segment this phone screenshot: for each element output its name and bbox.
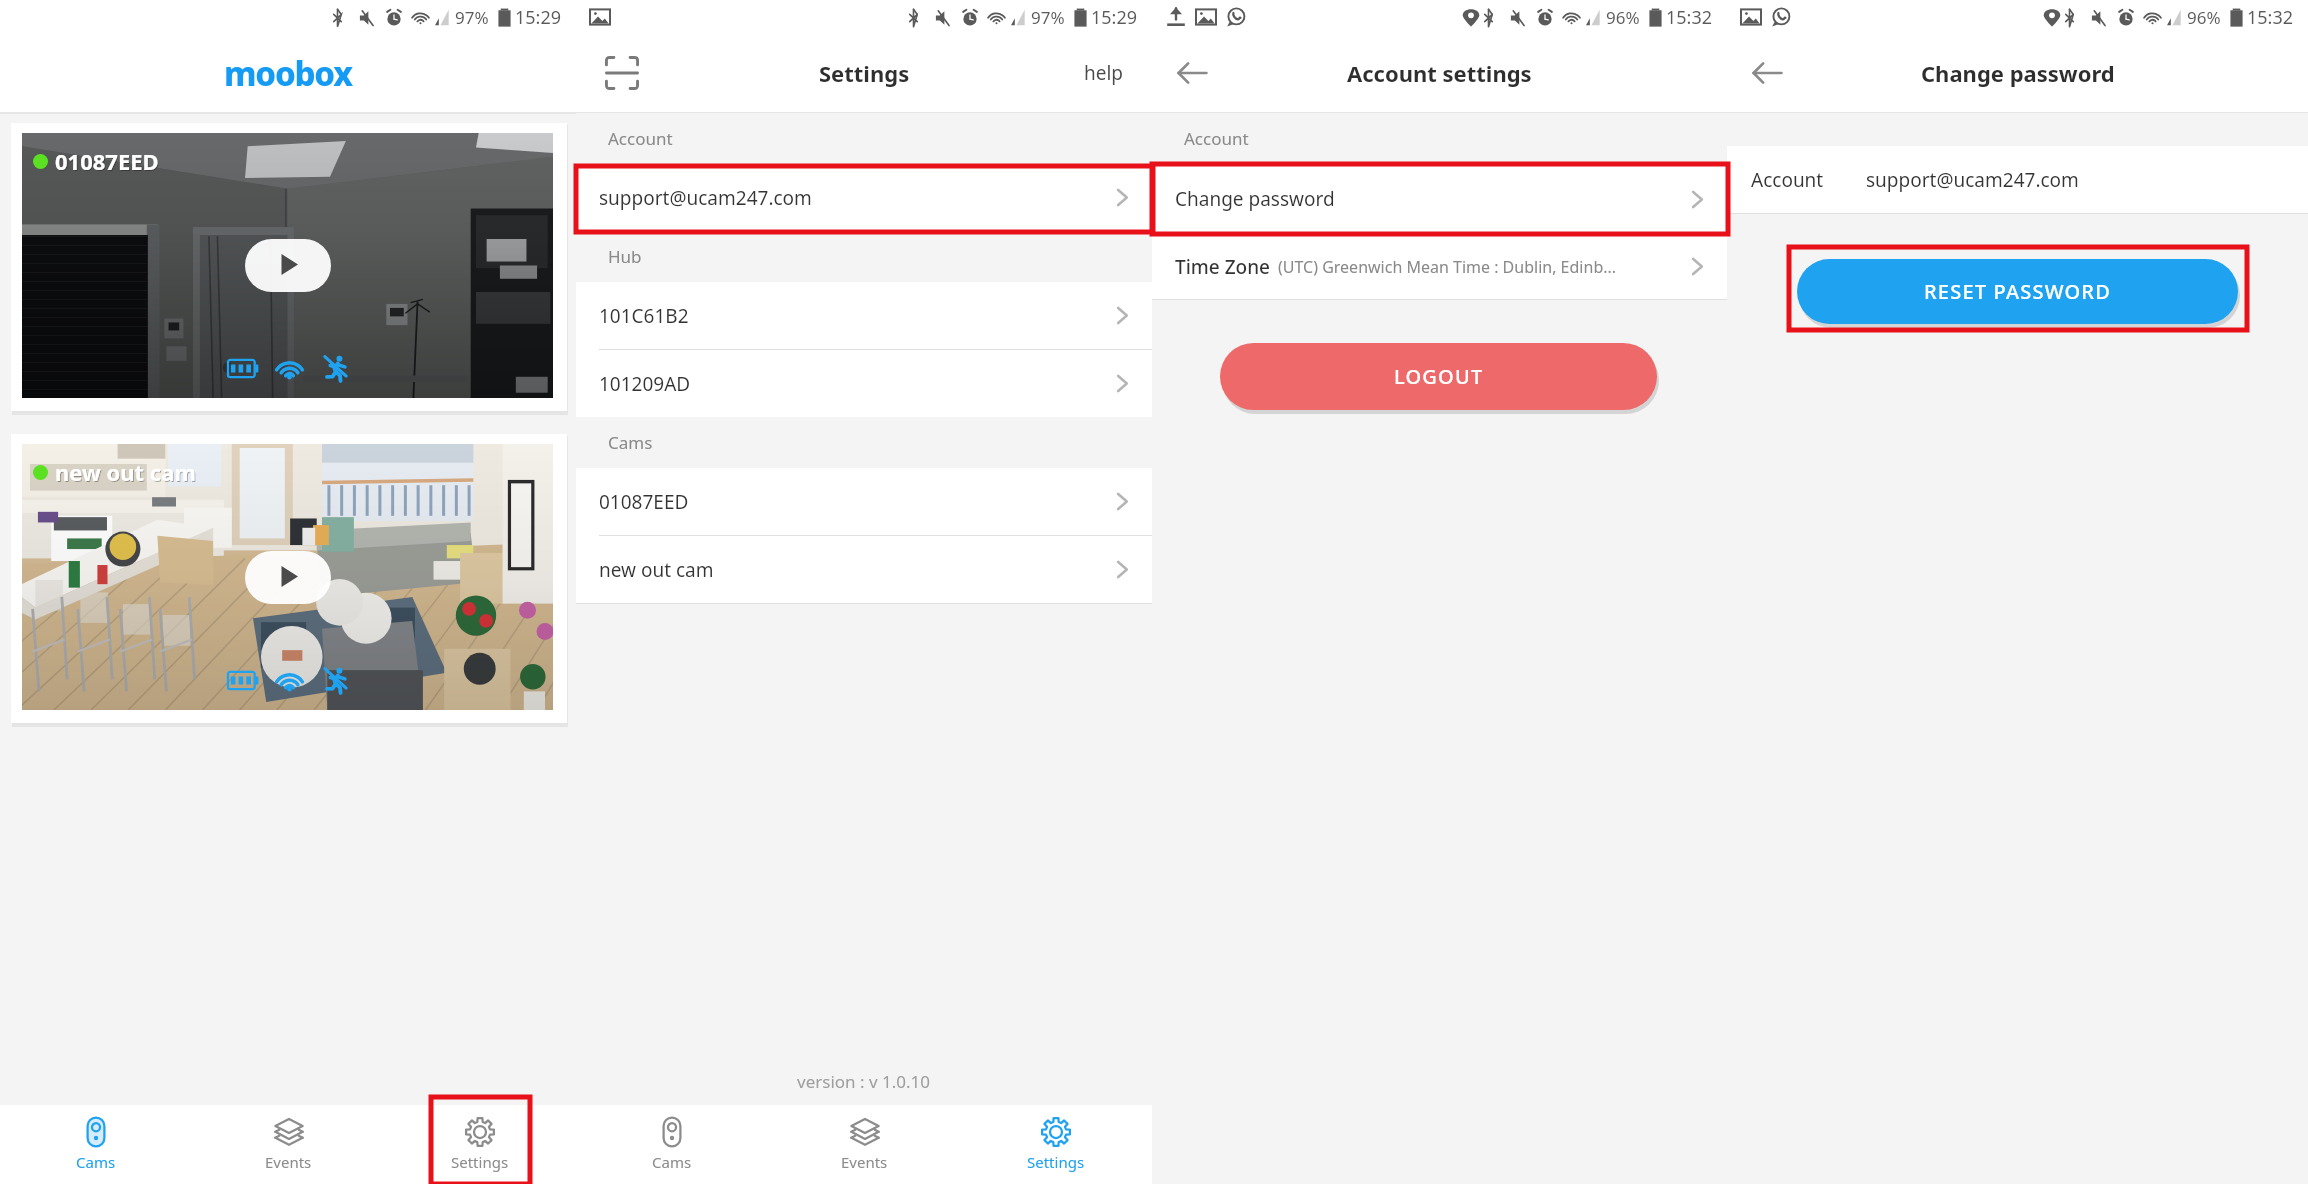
staticText: support@ucam247.com [1866,167,2079,193]
button[interactable]: Cams [0,1105,192,1184]
staticText: new out cam [55,457,196,487]
button[interactable]: Time Zone [1152,234,1727,299]
button[interactable]: Play [245,551,331,604]
button[interactable]: Back [1170,51,1214,95]
staticText: Settings [451,1152,509,1172]
staticText: 96% [1606,6,1640,29]
staticText: 97% [1031,6,1065,29]
button[interactable]: Change password [1152,164,1727,234]
staticText: version : v 1.0.10 [797,1070,931,1093]
staticText: Settings [819,58,910,88]
button[interactable]: support@ucam247.com [576,164,1152,231]
staticText: 101209AD [599,371,691,397]
staticText: Cams [652,1152,692,1172]
button[interactable]: 101C61B2 [576,282,1152,349]
staticText: support@ucam247.com [599,185,812,211]
button[interactable]: 01087EED [576,468,1152,535]
staticText: new out cam [56,458,197,488]
staticText: Events [265,1152,312,1172]
staticText: 01087EED [56,147,160,177]
staticText: new out cam [599,557,714,583]
staticText: help [1084,60,1124,86]
staticText: 15:29 [1091,5,1138,30]
staticText: 15:32 [2247,5,2294,30]
button[interactable]: help [1076,52,1132,94]
staticText: Hub [608,245,642,268]
button[interactable]: Account [1727,146,2308,213]
staticText: Settings [1027,1152,1085,1172]
staticText: Cams [608,431,653,454]
button[interactable]: Events [768,1105,960,1184]
button[interactable]: Cams [576,1105,768,1184]
staticText: 96% [2187,6,2221,29]
staticText: LOGOUT [1394,363,1484,390]
button[interactable]: LOGOUT [1220,343,1657,410]
staticText: (UTC) Greenwich Mean Time : Dublin, Edin… [1278,256,1678,278]
button[interactable]: RESET PASSWORD [1797,259,2238,324]
button[interactable]: Settings [960,1105,1152,1184]
staticText: Events [841,1152,888,1172]
staticText: Change password [1175,186,1335,212]
staticText: RESET PASSWORD [1924,278,2112,305]
staticText: 01087EED [599,489,689,515]
button[interactable]: 101209AD [576,350,1152,417]
staticText: Change password [1921,58,2115,88]
staticText: 97% [455,6,489,29]
button[interactable]: Play [245,239,331,292]
staticText: Cams [76,1152,116,1172]
button[interactable]: new out cam [576,536,1152,603]
button[interactable]: Scan QR code [600,51,644,95]
button[interactable]: Events [192,1105,384,1184]
button[interactable]: Settings [384,1105,576,1184]
staticText: Account [1751,167,1824,193]
staticText: Account settings [1347,58,1532,88]
staticText: Account [608,127,673,150]
button[interactable]: Back [1745,51,1789,95]
staticText: Time Zone [1175,254,1270,280]
staticText: moobox [224,51,352,96]
button[interactable]: 01087EED [22,133,553,398]
staticText: 101C61B2 [599,303,689,329]
staticText: 15:29 [515,5,562,30]
staticText: 01087EED [55,146,159,176]
staticText: Account [1184,127,1249,150]
button[interactable]: new out cam [22,444,553,710]
staticText: 15:32 [1666,5,1713,30]
